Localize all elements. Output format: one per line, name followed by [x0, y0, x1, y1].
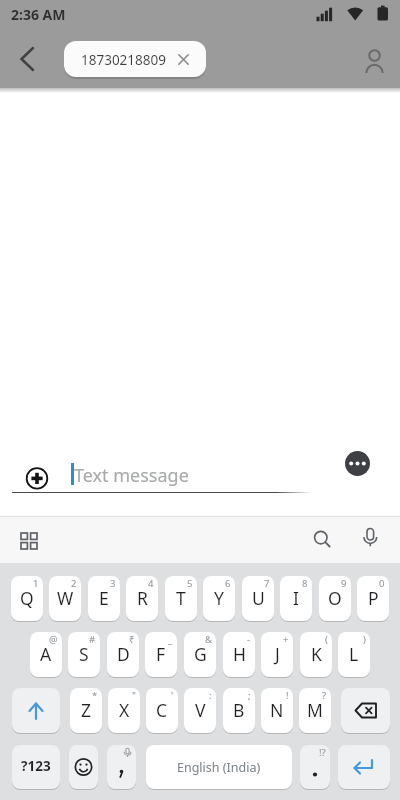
- staticText: !?: [319, 746, 326, 759]
- staticText: N: [270, 698, 284, 722]
- staticText: T: [176, 586, 186, 610]
- button[interactable]: [307, 524, 337, 554]
- button[interactable]: [14, 526, 44, 556]
- button[interactable]: W: [49, 576, 81, 621]
- staticText: Q: [20, 586, 34, 610]
- staticText: G: [194, 642, 207, 666]
- staticText: 7: [264, 577, 270, 590]
- staticText: !: [286, 689, 289, 702]
- button[interactable]: Z: [70, 688, 102, 733]
- staticText: -: [247, 633, 251, 646]
- staticText: W: [57, 586, 74, 610]
- staticText: D: [117, 642, 130, 666]
- button[interactable]: [107, 745, 136, 789]
- button[interactable]: M: [299, 688, 331, 733]
- staticText: 1: [33, 577, 39, 590]
- staticText: &: [205, 633, 212, 646]
- button[interactable]: [22, 463, 52, 493]
- button[interactable]: L: [338, 632, 370, 677]
- button[interactable]: [12, 688, 60, 733]
- button[interactable]: F: [145, 632, 177, 677]
- staticText: V: [195, 698, 206, 722]
- staticText: ?123: [21, 757, 51, 775]
- staticText: 5: [187, 577, 193, 590]
- staticText: F: [156, 642, 166, 666]
- staticText: *: [92, 689, 98, 702]
- button[interactable]: ?123: [12, 745, 60, 789]
- button[interactable]: K: [300, 632, 332, 677]
- staticText: Text message: [74, 463, 189, 488]
- button[interactable]: Text message: [74, 458, 310, 492]
- staticText: ": [132, 689, 136, 702]
- staticText: I: [293, 586, 299, 610]
- button[interactable]: [341, 688, 390, 733]
- staticText: Y: [214, 586, 224, 610]
- staticText: H: [233, 642, 246, 666]
- staticText: A: [40, 642, 52, 666]
- button[interactable]: [69, 745, 98, 789]
- staticText: @: [49, 633, 58, 646]
- staticText: :: [209, 689, 212, 702]
- button[interactable]: I: [280, 576, 312, 621]
- button[interactable]: R: [126, 576, 158, 621]
- button[interactable]: O: [319, 576, 351, 621]
- staticText: U: [252, 586, 265, 610]
- staticText: 18730218809: [81, 51, 166, 69]
- button[interactable]: T: [165, 576, 197, 621]
- button[interactable]: H: [223, 632, 255, 677]
- staticText: 4: [148, 577, 154, 590]
- staticText: +: [283, 633, 289, 646]
- staticText: ;: [248, 689, 251, 702]
- staticText: X: [119, 698, 130, 722]
- staticText: ₹: [129, 633, 135, 646]
- button[interactable]: U: [242, 576, 274, 621]
- staticText: _: [168, 633, 173, 646]
- staticText: J: [275, 642, 280, 666]
- button[interactable]: S: [68, 632, 100, 677]
- staticText: 9: [341, 577, 347, 590]
- staticText: M: [307, 698, 323, 722]
- staticText: 0: [379, 577, 385, 590]
- button[interactable]: P: [357, 576, 389, 621]
- staticText: English (India): [177, 759, 261, 776]
- staticText: S: [79, 642, 89, 666]
- staticText: 2: [71, 577, 77, 590]
- button[interactable]: Y: [203, 576, 235, 621]
- button[interactable]: E: [88, 576, 120, 621]
- button[interactable]: B: [223, 688, 255, 733]
- staticText: 3: [110, 577, 116, 590]
- staticText: C: [156, 698, 168, 722]
- staticText: K: [311, 642, 322, 666]
- button[interactable]: Q: [11, 576, 43, 621]
- staticText: 8: [302, 577, 308, 590]
- button[interactable]: G: [184, 632, 216, 677]
- staticText: R: [137, 586, 148, 610]
- button[interactable]: 18730218809: [64, 41, 206, 77]
- button[interactable]: J: [261, 632, 293, 677]
- staticText: B: [233, 698, 245, 722]
- button[interactable]: English (India): [146, 745, 292, 789]
- button[interactable]: [6, 40, 48, 78]
- staticText: L: [349, 642, 359, 666]
- staticText: E: [99, 586, 109, 610]
- staticText: #: [89, 633, 96, 646]
- button[interactable]: C: [146, 688, 178, 733]
- staticText: ): [363, 633, 366, 646]
- staticText: 6: [225, 577, 231, 590]
- button[interactable]: V: [184, 688, 216, 733]
- button[interactable]: N: [261, 688, 293, 733]
- staticText: P: [368, 586, 379, 610]
- staticText: Z: [81, 698, 92, 722]
- button[interactable]: A: [30, 632, 62, 677]
- button[interactable]: [345, 451, 370, 476]
- button[interactable]: [356, 42, 392, 78]
- staticText: (: [325, 633, 328, 646]
- button[interactable]: X: [108, 688, 140, 733]
- button[interactable]: D: [107, 632, 139, 677]
- staticText: 2:36 AM: [11, 5, 66, 24]
- staticText: O: [328, 586, 342, 610]
- button[interactable]: !?: [300, 745, 330, 789]
- button[interactable]: [355, 524, 385, 554]
- button[interactable]: [338, 745, 390, 789]
- staticText: ?: [322, 689, 327, 702]
